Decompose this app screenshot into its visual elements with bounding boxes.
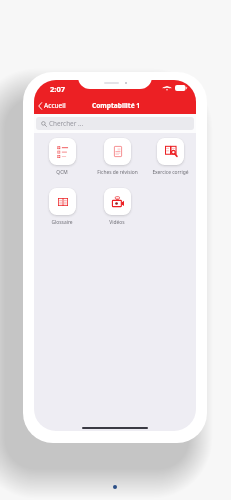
button[interactable]: QCM [35,138,89,176]
button[interactable]: Fiches de révision [90,138,144,176]
other: Wi-Fi [163,85,171,91]
staticText: Chercher ... [49,119,84,128]
staticText: Fiches de révision [97,169,138,176]
button[interactable]: Chercher ... [36,117,194,130]
other: Battery [175,85,187,91]
staticText: Exercice corrigé [152,169,189,176]
button[interactable]: Vidéos [90,188,144,226]
staticText: QCM [56,169,68,176]
staticText: Comptabilité 1 [92,101,141,110]
staticText: Accueil [44,101,66,110]
staticText: 2:07 [50,84,65,94]
staticText: Glossaire [51,219,73,226]
staticText: Vidéos [109,219,125,226]
button[interactable]: Glossaire [35,188,89,226]
button[interactable]: Exercice corrigé [143,138,196,176]
other: Back [38,102,42,110]
button[interactable]: Back [34,99,72,112]
